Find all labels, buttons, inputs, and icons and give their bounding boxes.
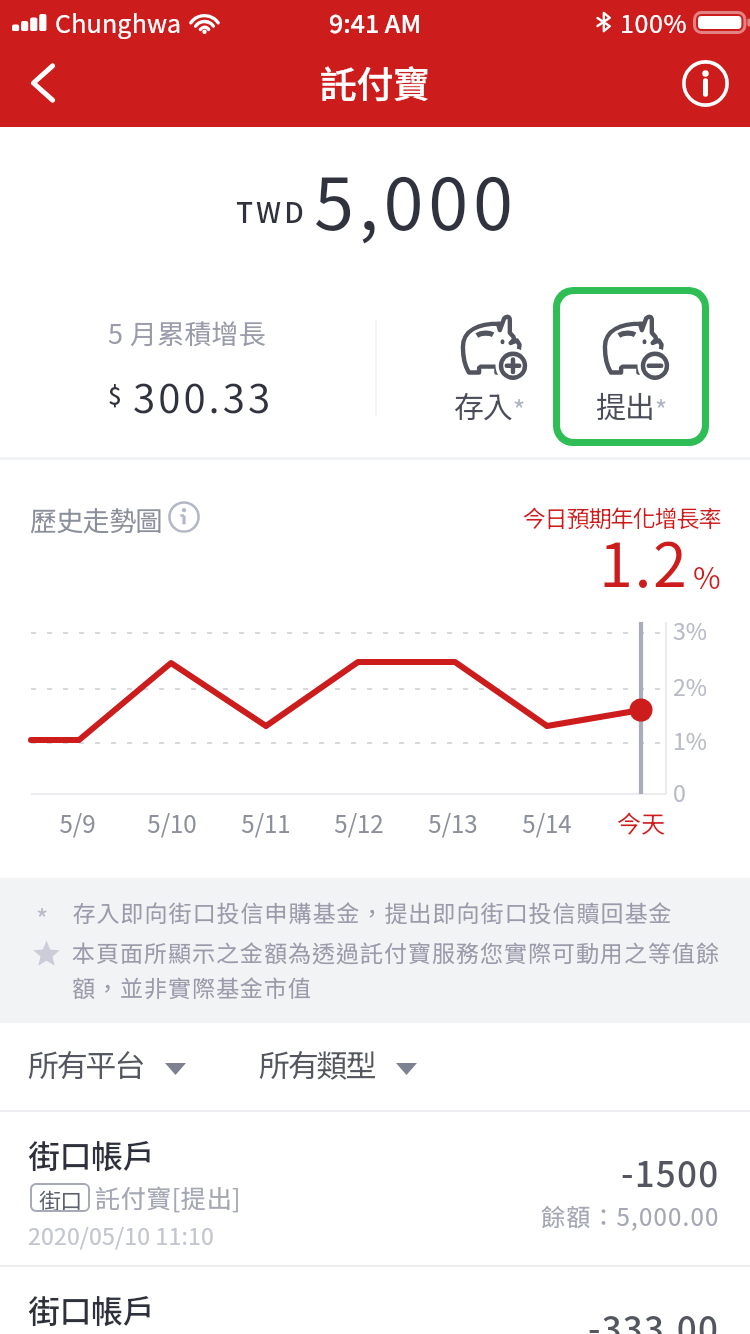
staticText: 提出	[596, 383, 654, 426]
staticText: 1%	[673, 723, 707, 756]
button[interactable]: Back	[0, 44, 80, 127]
staticText: Chunghwa	[55, 4, 182, 40]
staticText: 餘額：5,000.00	[541, 1198, 720, 1233]
staticText: $	[108, 377, 122, 412]
staticText: 2020/05/10 11:10	[28, 1218, 214, 1251]
staticText: 5/12	[334, 805, 384, 840]
staticText: 存入	[454, 383, 512, 426]
button[interactable]	[0, 1265, 750, 1334]
staticText: -1500	[621, 1146, 720, 1197]
staticText: 5/13	[428, 805, 478, 840]
staticText: *	[655, 390, 668, 428]
staticText: 100%	[620, 4, 688, 40]
staticText: 3%	[673, 613, 707, 646]
staticText: 存入即向街口投信申購基金，提出即向街口投信贖回基金	[72, 895, 672, 928]
staticText: 300.33	[133, 367, 274, 425]
staticText: 9:41 AM	[329, 4, 422, 40]
staticText: TWD	[236, 191, 307, 232]
staticText: 5/9	[59, 805, 96, 840]
staticText: 所有平台	[28, 1041, 144, 1086]
staticText: 2%	[673, 669, 707, 702]
staticText: 本頁面所顯示之金額為透過託付寶服務您實際可動用之等值餘額，並非實際基金市值	[72, 935, 727, 1004]
button[interactable]: 所有平台	[22, 1038, 192, 1088]
staticText: 託付寶	[320, 55, 430, 109]
staticText: 5/14	[522, 805, 572, 840]
button[interactable]: Information	[666, 44, 750, 127]
staticText: 0	[673, 775, 686, 808]
staticText: 今日預期年化增長率	[523, 500, 721, 533]
button[interactable]: 提出	[560, 294, 702, 439]
button[interactable]	[0, 1110, 750, 1265]
staticText: 街口帳戶	[28, 1131, 155, 1177]
staticText: -333.00	[588, 1301, 720, 1334]
button[interactable]: 存入	[424, 287, 554, 437]
staticText: 託付寶[提出]	[95, 1179, 242, 1215]
staticText: *	[513, 390, 526, 428]
button[interactable]: Chart information	[166, 498, 202, 534]
staticText: %	[693, 554, 721, 597]
staticText: 今天	[617, 805, 665, 840]
staticText: 街口	[39, 1183, 82, 1212]
staticText: 5 月累積增長	[108, 313, 267, 352]
staticText: 1.2	[599, 516, 689, 604]
button[interactable]: 所有類型	[253, 1038, 423, 1088]
staticText: 所有類型	[259, 1041, 375, 1086]
staticText: 歷史走勢圖	[30, 500, 162, 539]
staticText: 5,000	[314, 146, 518, 250]
staticText: *	[36, 899, 49, 937]
staticText: 5/11	[241, 805, 291, 840]
staticText: 5/10	[147, 805, 197, 840]
staticText: 街口帳戶	[28, 1286, 155, 1332]
